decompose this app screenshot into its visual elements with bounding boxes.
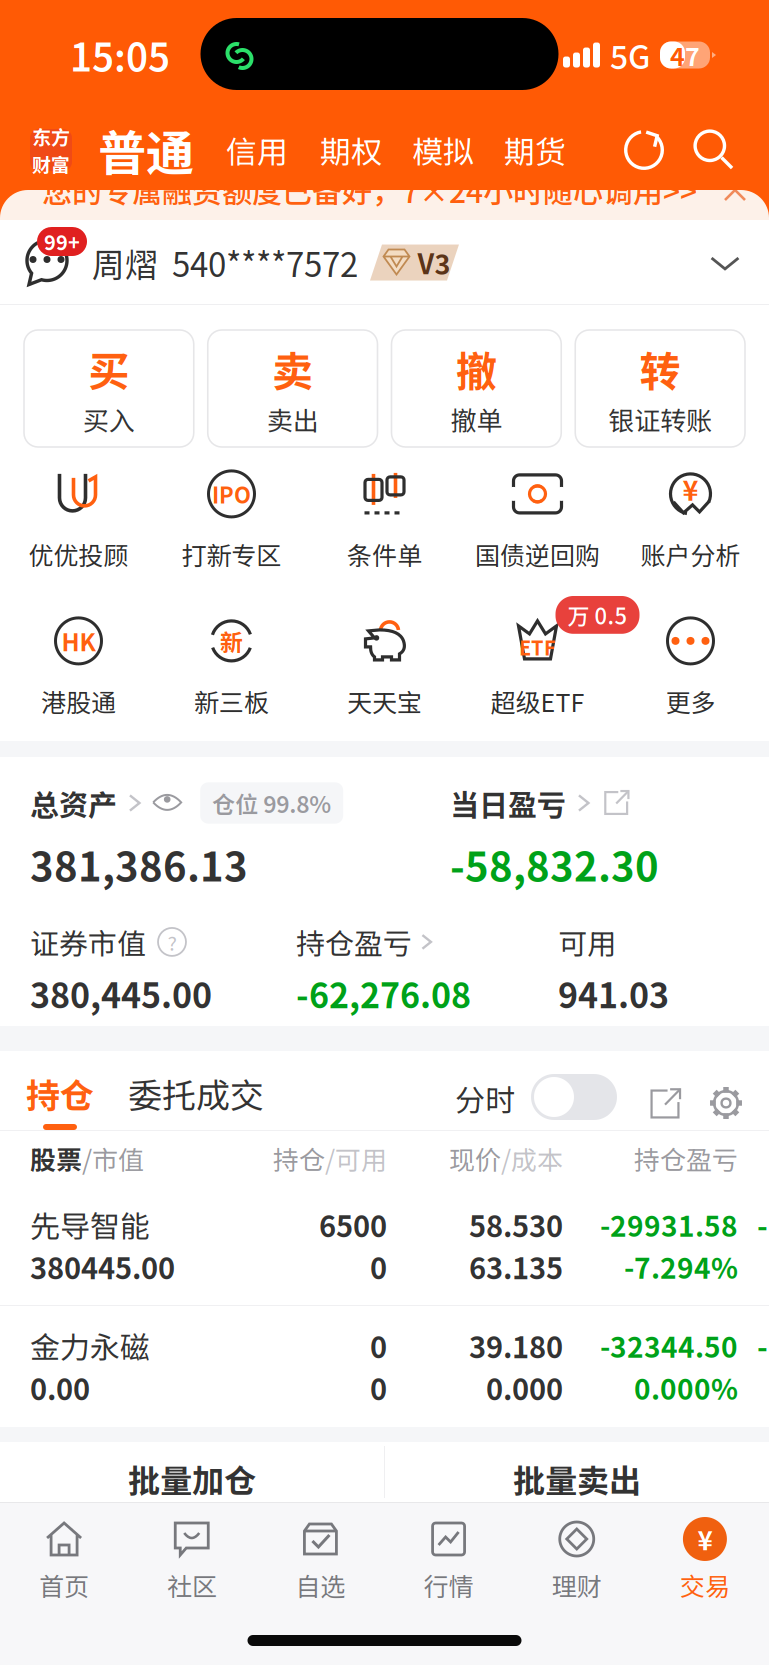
button[interactable]: 新 <box>155 616 308 719</box>
staticText: 卖 <box>272 339 313 398</box>
staticText: 0.00 <box>30 1366 90 1408</box>
staticText: 买入 <box>83 400 135 438</box>
button[interactable]: 更多 <box>614 616 767 719</box>
staticText: 7 <box>685 37 700 73</box>
staticText: 撤 <box>456 339 497 398</box>
button[interactable]: Refresh <box>623 129 665 171</box>
staticText: - <box>757 1203 768 1245</box>
button[interactable]: 国债逆回购 <box>461 469 614 572</box>
button[interactable]: Intraday chart toggle <box>531 1074 617 1120</box>
staticText: 381,386.13 <box>30 835 248 893</box>
staticText: 信用 <box>226 128 288 172</box>
staticText: 金力永磁 <box>30 1324 150 1367</box>
staticText: 万 0.5 <box>567 599 627 631</box>
staticText: 自选 <box>295 1567 345 1603</box>
button[interactable]: Settings <box>709 1086 743 1120</box>
staticText: 首页 <box>39 1567 89 1603</box>
button[interactable]: 金力永磁 <box>0 1306 769 1427</box>
button[interactable]: 撤 <box>391 330 561 447</box>
button[interactable]: IPO <box>155 469 308 572</box>
staticText: 380445.00 <box>30 1245 175 1287</box>
button[interactable]: 理财 <box>513 1517 641 1603</box>
button[interactable]: 普通 <box>72 115 194 185</box>
staticText: 0 <box>370 1245 387 1287</box>
button[interactable]: ¥ <box>614 469 767 572</box>
button[interactable]: Search <box>693 129 735 171</box>
staticText: -32344.50 <box>600 1325 738 1366</box>
button[interactable]: 期权 <box>288 128 382 172</box>
button[interactable]: ETF <box>461 616 614 719</box>
staticText: 540****7572 <box>172 239 358 286</box>
button[interactable]: 买 <box>24 330 194 447</box>
staticText: /可用 <box>325 1140 387 1177</box>
staticText: -29931.58 <box>600 1204 738 1245</box>
staticText: 5G <box>610 32 650 78</box>
button[interactable]: 卖 <box>208 330 377 447</box>
button[interactable]: 行情 <box>384 1517 513 1603</box>
staticText: 先导智能 <box>30 1203 150 1246</box>
button[interactable]: 社区 <box>128 1517 256 1603</box>
staticText: ¥ <box>697 1520 712 1558</box>
staticText: HK <box>61 623 95 658</box>
staticText: 4 <box>670 37 685 73</box>
staticText: 证券市值 <box>30 921 146 963</box>
staticText: 天天宝 <box>347 683 422 719</box>
button[interactable]: 委托成交 <box>94 1069 264 1130</box>
staticText: 股票 <box>30 1140 82 1177</box>
staticText: -58,832.30 <box>450 835 659 893</box>
staticText: 0 <box>370 1324 387 1366</box>
staticText: 国债逆回购 <box>475 536 600 572</box>
staticText: 当日盈亏 <box>450 782 566 824</box>
button[interactable]: 优优投顾 <box>2 469 155 572</box>
staticText: 您的专属融资额度已备好，7×24小时随心调用>> <box>42 168 697 212</box>
button[interactable]: 99+ <box>0 220 769 305</box>
staticText: -62,276.08 <box>296 969 471 1018</box>
button[interactable]: 批量加仓 <box>0 1442 384 1502</box>
staticText: 持仓 <box>26 1069 94 1118</box>
staticText: 0.000% <box>634 1367 738 1408</box>
staticText: 账户分析 <box>640 536 740 572</box>
staticText: 380,445.00 <box>30 969 212 1018</box>
staticText: V3 <box>417 243 450 282</box>
staticText: -7.294% <box>624 1246 738 1287</box>
staticText: 理财 <box>552 1567 602 1603</box>
staticText: ? <box>167 927 176 956</box>
button[interactable]: ¥ <box>641 1517 769 1603</box>
staticText: 15:05 <box>70 27 170 82</box>
staticText: 撤单 <box>450 400 502 438</box>
button[interactable]: 批量卖出 <box>385 1442 769 1502</box>
staticText: 总资产 <box>30 782 117 824</box>
staticText: 仓位 99.8% <box>212 786 331 820</box>
staticText: 超级ETF <box>490 683 584 719</box>
staticText: 转 <box>640 339 681 398</box>
button[interactable]: 先导智能 <box>0 1186 769 1305</box>
button[interactable]: 转 <box>575 330 745 447</box>
staticText: 持仓盈亏 <box>296 921 412 963</box>
staticText: ETF <box>519 632 556 661</box>
staticText: 普通 <box>98 115 194 185</box>
staticText: 交易 <box>680 1567 730 1603</box>
button[interactable]: 天天宝 <box>308 616 461 719</box>
button[interactable]: 首页 <box>0 1517 128 1603</box>
staticText: 东方 <box>32 122 70 150</box>
button[interactable]: 模拟 <box>382 128 474 172</box>
button[interactable]: 信用 <box>194 128 288 172</box>
staticText: 打新专区 <box>181 536 281 572</box>
button[interactable]: 期货 <box>474 128 566 172</box>
button[interactable]: 自选 <box>256 1517 384 1603</box>
staticText: 新 <box>220 624 243 657</box>
staticText: 新三板 <box>194 683 269 719</box>
staticText: IPO <box>212 478 251 510</box>
button[interactable]: 条件单 <box>308 469 461 572</box>
staticText: 分时 <box>455 1077 515 1120</box>
staticText: 周熠 <box>92 239 158 286</box>
staticText: ¥ <box>682 469 698 508</box>
button[interactable]: Expand <box>649 1088 681 1120</box>
staticText: /市值 <box>82 1140 144 1177</box>
staticText: 0.000 <box>486 1366 563 1408</box>
staticText: 941.03 <box>558 969 669 1018</box>
staticText: 63.135 <box>469 1245 563 1287</box>
staticText: 银证转账 <box>608 400 712 438</box>
button[interactable]: 持仓 <box>26 1069 94 1130</box>
button[interactable]: HK <box>2 616 155 719</box>
